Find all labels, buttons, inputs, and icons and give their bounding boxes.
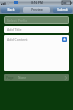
staticText: Back [7, 8, 15, 12]
staticText: Submit [57, 8, 68, 12]
button[interactable]: Page [4, 74, 69, 81]
button[interactable]: Select Prefix [4, 16, 69, 24]
staticText: Page [6, 76, 14, 80]
button[interactable]: Add Content [4, 35, 69, 71]
button[interactable]: Add Title [4, 26, 69, 33]
button[interactable]: Back [1, 7, 20, 13]
staticText: 8:16 PM [31, 1, 43, 5]
button[interactable]: Submit [53, 7, 72, 13]
button[interactable]: Preview [23, 7, 50, 13]
staticText: Add Title [7, 27, 22, 32]
button[interactable]: Insert media [62, 37, 67, 42]
staticText: Preview [31, 8, 43, 12]
staticText: Add Content [7, 37, 28, 42]
staticText: Select Prefix [7, 18, 28, 23]
staticText: None [18, 76, 27, 80]
